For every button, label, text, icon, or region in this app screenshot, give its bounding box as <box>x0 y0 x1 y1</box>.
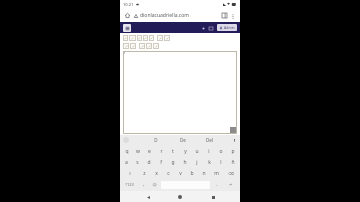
staticText: ↵ <box>229 182 233 187</box>
button[interactable]: n <box>198 168 210 179</box>
staticText: d <box>147 159 151 166</box>
staticText: ⇧ <box>128 171 132 176</box>
button[interactable]: Recents <box>208 192 218 202</box>
button[interactable]: l <box>215 157 227 168</box>
button[interactable]: d <box>143 157 155 168</box>
button[interactable]: Home <box>175 192 185 202</box>
button[interactable]: De <box>169 137 196 143</box>
staticText: f <box>160 159 162 166</box>
staticText: i <box>208 148 210 155</box>
staticText: m <box>214 170 219 177</box>
button[interactable]: Symbols <box>121 179 138 190</box>
button[interactable]: Emoji <box>149 179 160 190</box>
staticText: k <box>208 159 211 166</box>
staticText: p <box>231 148 235 155</box>
staticText: n <box>202 170 206 177</box>
button[interactable]: Editor tool <box>137 35 142 41</box>
staticText: t <box>172 148 174 155</box>
staticText: , <box>143 181 145 188</box>
button[interactable]: D <box>142 137 169 143</box>
staticText: w <box>136 148 140 155</box>
button[interactable]: Editor tool <box>157 35 163 41</box>
button[interactable]: Editor tool <box>129 35 136 41</box>
staticText: s <box>136 159 139 166</box>
button[interactable]: Admin <box>219 24 235 31</box>
button[interactable]: Enter <box>222 179 239 190</box>
button[interactable]: Editor tool <box>123 43 129 49</box>
staticText: De <box>180 137 186 143</box>
button[interactable]: Resize <box>123 51 237 134</box>
button[interactable]: r <box>155 146 167 157</box>
staticText: D <box>154 137 158 143</box>
staticText: Admin <box>224 25 235 30</box>
button[interactable]: c <box>162 168 174 179</box>
staticText: o <box>219 148 223 155</box>
staticText: ?123 <box>125 182 134 187</box>
staticText: c <box>167 170 170 177</box>
staticText: Del <box>206 137 213 143</box>
button[interactable]: w <box>132 146 143 157</box>
staticText: dionlacuadriella.com <box>140 12 189 19</box>
button[interactable]: m <box>210 168 222 179</box>
button[interactable]: x <box>150 168 162 179</box>
staticText: ñ <box>231 159 235 166</box>
button[interactable]: Editor tool <box>130 43 136 49</box>
staticText: g <box>171 159 175 166</box>
button[interactable]: Editor tool <box>139 43 145 49</box>
button[interactable]: f <box>155 157 167 168</box>
button[interactable]: Menu <box>123 24 131 32</box>
staticText: x <box>155 170 158 177</box>
button[interactable]: e <box>143 146 155 157</box>
staticText: . <box>216 181 218 188</box>
button[interactable]: b <box>186 168 198 179</box>
button[interactable]: j <box>191 157 203 168</box>
staticText: u <box>195 148 199 155</box>
staticText: l <box>220 159 222 166</box>
button[interactable]: ñ <box>227 157 239 168</box>
button[interactable]: g <box>167 157 179 168</box>
button[interactable]: i <box>203 146 215 157</box>
button[interactable]: v <box>174 168 186 179</box>
button[interactable]: Tabs <box>220 11 229 20</box>
button[interactable]: Editor tool <box>143 35 148 41</box>
button[interactable]: Del <box>196 137 223 143</box>
button[interactable]: o <box>215 146 227 157</box>
button[interactable]: , <box>138 179 149 190</box>
staticText: q <box>125 148 129 155</box>
staticText: y <box>184 148 187 155</box>
staticText: ☺ <box>152 182 157 187</box>
button[interactable]: Voice input <box>231 137 237 143</box>
button[interactable]: h <box>179 157 191 168</box>
button[interactable]: y <box>179 146 191 157</box>
button[interactable]: t <box>167 146 179 157</box>
button[interactable]: a <box>121 157 132 168</box>
button[interactable]: k <box>203 157 215 168</box>
button[interactable]: Editor tool <box>153 43 159 49</box>
button[interactable]: q <box>121 146 132 157</box>
button[interactable]: s <box>132 157 143 168</box>
button[interactable]: Notifications <box>200 25 206 31</box>
button[interactable]: Editor tool <box>164 35 170 41</box>
button[interactable]: More options <box>229 12 237 20</box>
button[interactable]: z <box>138 168 150 179</box>
button[interactable]: Shift <box>121 168 138 179</box>
button[interactable]: Editor tool <box>149 35 154 41</box>
button[interactable]: dionlacuadriella.com <box>134 12 218 19</box>
button[interactable]: Home <box>123 11 132 20</box>
staticText: 10:21 <box>123 2 134 7</box>
staticText: ⌫ <box>228 171 234 176</box>
staticText: v <box>179 170 182 177</box>
button[interactable]: p <box>227 146 239 157</box>
button[interactable]: Editor tool <box>123 35 128 41</box>
staticText: e <box>148 148 151 155</box>
button[interactable]: . <box>211 179 222 190</box>
staticText: r <box>160 148 163 155</box>
button[interactable]: Voice suggestions <box>123 137 129 143</box>
button[interactable]: Back <box>143 192 153 202</box>
button[interactable]: u <box>191 146 203 157</box>
button[interactable]: Editor tool <box>146 43 152 49</box>
button[interactable]: Backspace <box>222 168 239 179</box>
button[interactable]: Messages <box>208 25 214 31</box>
